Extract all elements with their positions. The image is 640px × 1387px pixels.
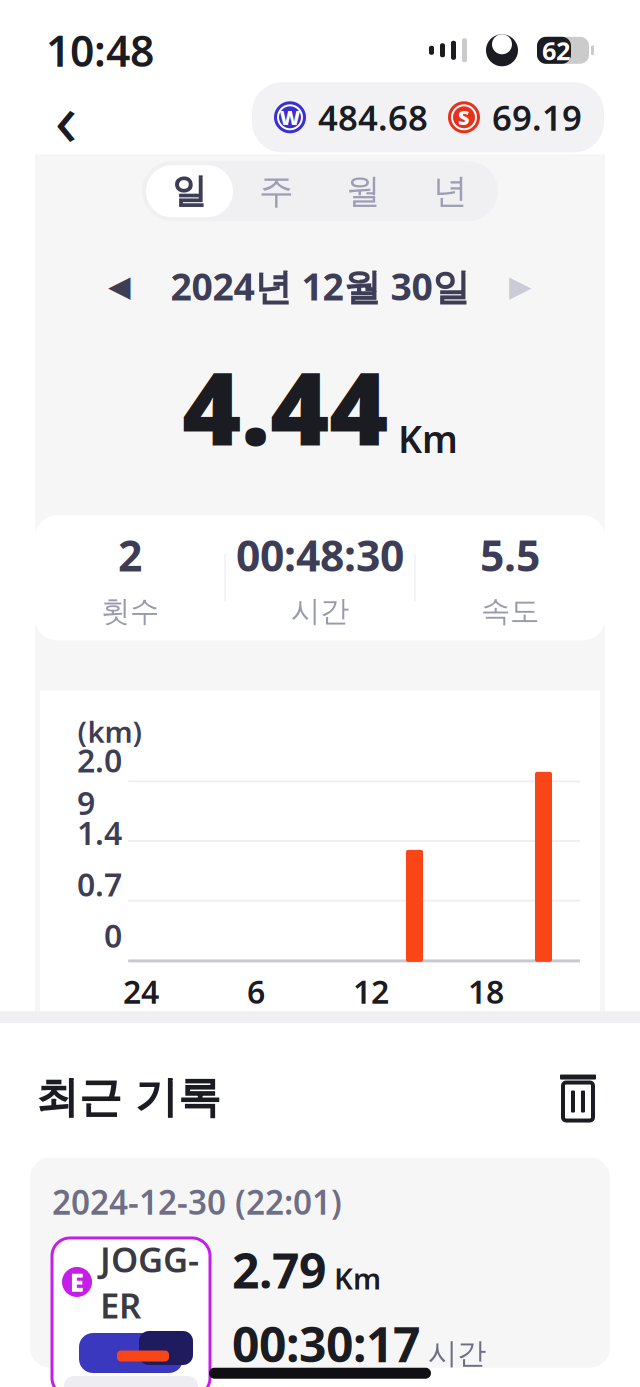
staticText: 일 [172, 170, 207, 212]
staticText: Km [398, 414, 458, 463]
staticText: ▶ [509, 269, 532, 303]
staticText: 69.19 [492, 94, 582, 140]
staticText: 2024년 12월 30일 [170, 261, 469, 311]
staticText: 00:48:30 [236, 526, 404, 583]
staticText: 00:30:17 [232, 1312, 420, 1375]
staticText: 횟수 [101, 593, 159, 629]
staticText: 6 [247, 970, 265, 1013]
button[interactable]: 주 [233, 165, 320, 217]
staticText: 12 [353, 970, 389, 1013]
button[interactable]: W [252, 82, 604, 152]
staticText: 0 [104, 914, 122, 957]
staticText: 2.09 [77, 739, 122, 824]
button[interactable]: Previous day [94, 264, 144, 308]
staticText: ‹ [54, 68, 77, 167]
staticText: 24 [123, 970, 159, 1013]
button[interactable]: 일 [146, 165, 233, 217]
staticText: 최근 기록 [36, 1071, 221, 1124]
staticText: 62 [542, 33, 570, 67]
staticText: 1.4 [77, 811, 122, 854]
staticText: 월 [346, 170, 381, 212]
button[interactable]: 2024-12-30 (22:01) [30, 1158, 610, 1368]
staticText: Km [334, 1259, 381, 1298]
staticText: 주 [259, 170, 294, 212]
staticText: E [70, 1265, 84, 1299]
staticText: 10:48 [46, 22, 154, 79]
staticText: (km) [77, 712, 142, 751]
button[interactable]: 년 [407, 165, 494, 217]
staticText: 년 [433, 170, 468, 212]
staticText: 2 [118, 526, 142, 583]
button[interactable]: Delete records [552, 1071, 604, 1123]
button[interactable]: 월 [320, 165, 407, 217]
button[interactable]: Back [36, 87, 96, 147]
staticText: 0.7 [77, 863, 122, 905]
button[interactable]: Next day [495, 264, 545, 308]
staticText: 5.5 [480, 526, 540, 583]
staticText: 18 [468, 970, 504, 1013]
staticText: 2024-12-30 (22:01) [52, 1180, 342, 1224]
staticText: ◀ [108, 269, 131, 303]
staticText: 4.44 [182, 339, 388, 473]
staticText: 시간 [428, 1335, 486, 1371]
staticText: 2.79 [232, 1238, 326, 1302]
staticText: S [458, 104, 470, 131]
staticText: W [279, 104, 300, 131]
staticText: 시간 [291, 593, 349, 629]
staticText: 속도 [481, 593, 539, 629]
staticText: 484.68 [318, 94, 428, 140]
staticText: JOGGER [100, 1236, 199, 1328]
